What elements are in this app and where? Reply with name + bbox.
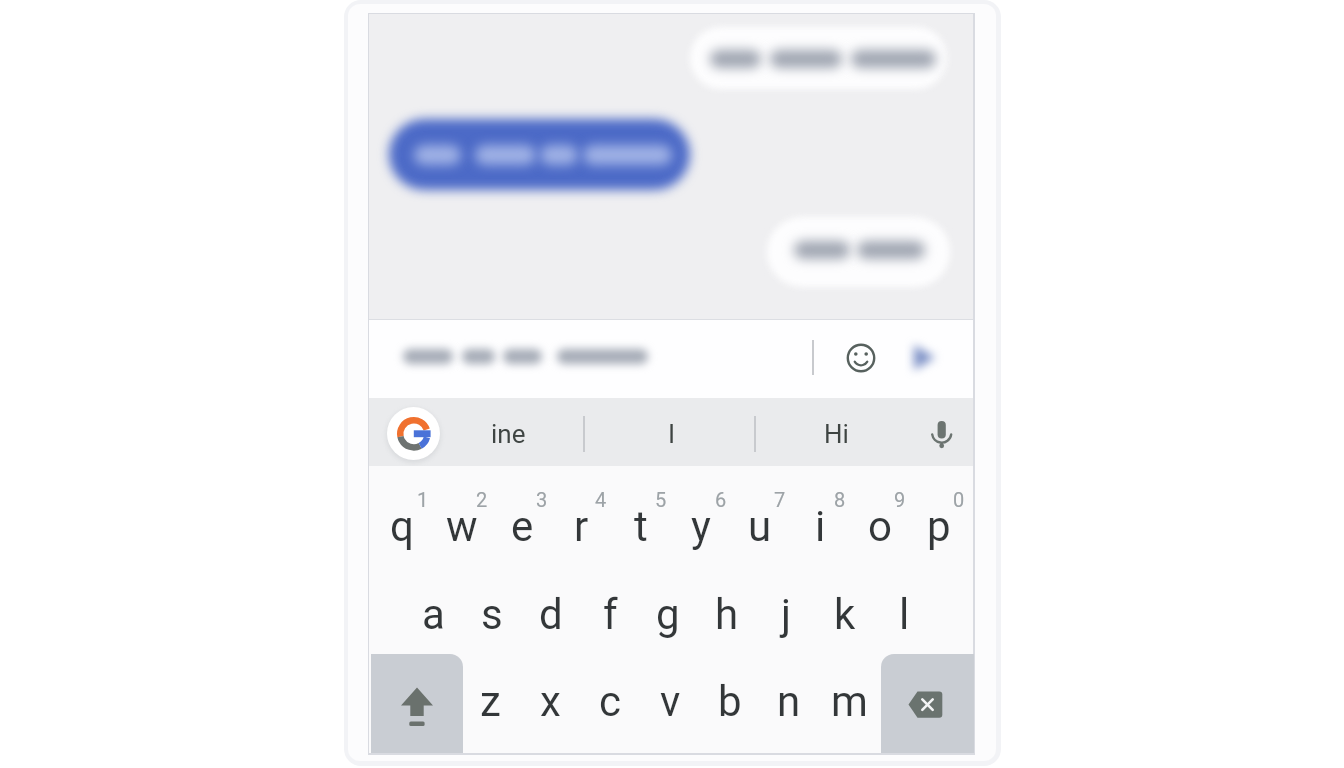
button[interactable] <box>767 217 950 287</box>
button[interactable] <box>790 466 850 554</box>
button[interactable] <box>403 554 462 644</box>
button[interactable] <box>551 466 611 554</box>
button[interactable] <box>580 554 639 644</box>
button[interactable] <box>520 644 580 750</box>
staticText: j <box>781 590 792 639</box>
button[interactable] <box>698 554 757 644</box>
button[interactable] <box>373 466 433 554</box>
button[interactable] <box>462 554 521 644</box>
button[interactable] <box>730 466 790 554</box>
staticText: 1 <box>417 488 429 511</box>
button[interactable] <box>909 466 969 554</box>
staticText: d <box>539 590 563 639</box>
button[interactable] <box>874 554 933 644</box>
staticText: k <box>834 590 856 639</box>
staticText: 2 <box>476 488 488 511</box>
button[interactable] <box>639 554 698 644</box>
staticText: I <box>668 419 676 449</box>
staticText: e <box>511 502 534 551</box>
staticText: Hi <box>824 419 849 449</box>
button[interactable] <box>460 644 520 750</box>
button[interactable] <box>850 466 910 554</box>
staticText: m <box>831 677 868 726</box>
button[interactable] <box>756 554 815 644</box>
button[interactable] <box>369 14 973 319</box>
staticText: 6 <box>715 488 727 511</box>
staticText: a <box>422 590 445 639</box>
staticText: u <box>748 502 772 551</box>
staticText: 3 <box>536 488 548 511</box>
staticText: x <box>540 677 561 726</box>
button[interactable] <box>611 466 671 554</box>
button[interactable] <box>815 554 874 644</box>
staticText: 5 <box>655 488 667 511</box>
button[interactable] <box>881 654 974 753</box>
button[interactable] <box>389 119 690 190</box>
staticText: 8 <box>834 488 846 511</box>
staticText: r <box>574 502 589 551</box>
button[interactable] <box>786 400 886 464</box>
staticText: w <box>446 502 478 551</box>
staticText: o <box>868 502 892 551</box>
button[interactable] <box>759 644 819 750</box>
staticText: z <box>480 677 501 726</box>
button[interactable] <box>819 644 879 750</box>
button[interactable] <box>622 400 722 464</box>
button[interactable] <box>369 319 973 398</box>
button[interactable] <box>521 554 580 644</box>
button[interactable] <box>492 466 552 554</box>
staticText: q <box>390 502 414 551</box>
staticText: g <box>656 590 680 639</box>
button[interactable] <box>580 644 640 750</box>
button[interactable] <box>432 466 492 554</box>
staticText: n <box>777 677 801 726</box>
staticText: h <box>715 590 739 639</box>
staticText: f <box>603 590 618 639</box>
button[interactable] <box>671 466 731 554</box>
button[interactable] <box>845 342 877 374</box>
staticText: ine <box>491 419 526 449</box>
button[interactable] <box>925 415 959 453</box>
staticText: y <box>691 502 711 551</box>
staticText: v <box>660 677 681 726</box>
button[interactable] <box>907 342 941 373</box>
staticText: 9 <box>894 488 906 511</box>
staticText: 7 <box>774 488 786 511</box>
staticText: i <box>815 502 826 551</box>
button[interactable] <box>458 400 558 464</box>
button[interactable] <box>387 407 440 460</box>
button[interactable] <box>700 644 760 750</box>
staticText: 0 <box>953 488 965 511</box>
staticText: s <box>481 590 503 639</box>
staticText: l <box>899 590 910 639</box>
button[interactable] <box>640 644 700 750</box>
staticText: b <box>718 677 742 726</box>
staticText: 4 <box>595 488 607 511</box>
staticText: c <box>599 677 621 726</box>
staticText: t <box>634 502 648 551</box>
staticText: p <box>927 502 951 551</box>
button[interactable] <box>690 27 947 89</box>
button[interactable] <box>371 654 463 753</box>
